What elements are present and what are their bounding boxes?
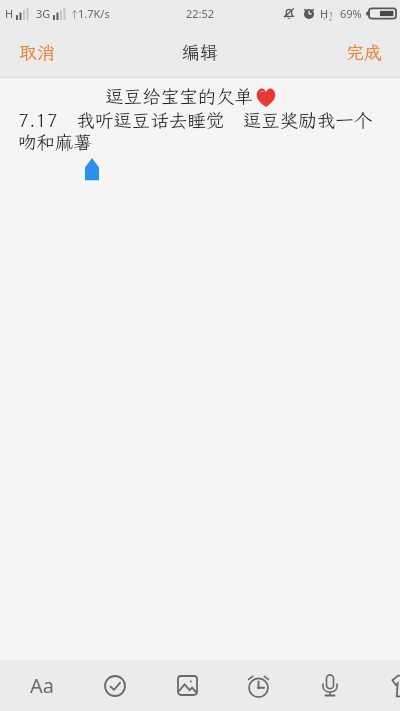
staticText: H [320,6,329,21]
button[interactable]: Reminder [222,660,294,711]
staticText: 1 [329,10,334,20]
staticText: 69% [340,6,362,21]
button[interactable]: Insert image [151,660,223,711]
button[interactable]: Voice input [294,660,366,711]
staticText: 编辑 [181,40,219,64]
staticText: Aa [30,672,54,699]
button[interactable]: 完成 [330,30,400,74]
staticText: 逗豆给宝宝的欠单 [105,84,254,108]
button[interactable]: Theme [366,660,400,711]
button[interactable]: Checklist [79,660,151,711]
staticText: 1.7K/s [78,6,110,21]
staticText: 22:52 [186,6,215,21]
staticText: 取消 [19,40,55,64]
button[interactable]: 取消 [0,30,71,74]
staticText: 7.17 我听逗豆话去睡觉 逗豆奖励我一个吻和麻薯 [18,108,384,155]
staticText: H [5,6,14,21]
button[interactable]: Text size [6,660,78,711]
staticText: 3G [36,6,51,21]
staticText: 完成 [346,40,382,64]
